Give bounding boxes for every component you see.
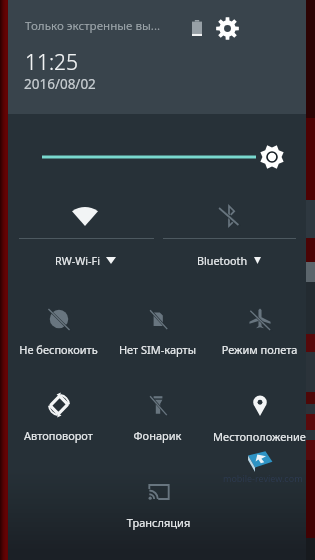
button[interactable]: Settings (216, 17, 239, 40)
staticText: Bluetooth (197, 253, 248, 268)
button[interactable]: Местоположение (210, 380, 309, 446)
staticText: RW-Wi-Fi (55, 253, 100, 268)
button[interactable]: Не беспокоить (9, 293, 108, 359)
staticText: Режим полета (210, 342, 309, 357)
staticText: Трансляция (109, 515, 208, 530)
staticText: Автоповорот (9, 428, 108, 443)
staticText: mobile-review.com (223, 472, 303, 484)
staticText: Не беспокоить (9, 342, 108, 357)
button[interactable]: Bluetooth (158, 185, 306, 273)
staticText: Нет SIM-карты (108, 342, 207, 357)
button[interactable]: Трансляция (109, 466, 208, 532)
button[interactable]: RW-Wi-Fi (8, 185, 158, 273)
button[interactable]: Brightness (8, 133, 306, 179)
staticText: 11:25 (25, 48, 79, 77)
button[interactable]: Фонарик (108, 379, 207, 445)
button[interactable]: Режим полета (210, 293, 309, 359)
staticText: Только экстренные вы... (25, 18, 161, 34)
button[interactable]: Нет SIM-карты (108, 293, 207, 359)
staticText: Местоположение (210, 429, 309, 444)
staticText: Фонарик (108, 428, 207, 443)
staticText: 2016/08/02 (24, 75, 96, 93)
button[interactable]: Автоповорот (9, 379, 108, 445)
